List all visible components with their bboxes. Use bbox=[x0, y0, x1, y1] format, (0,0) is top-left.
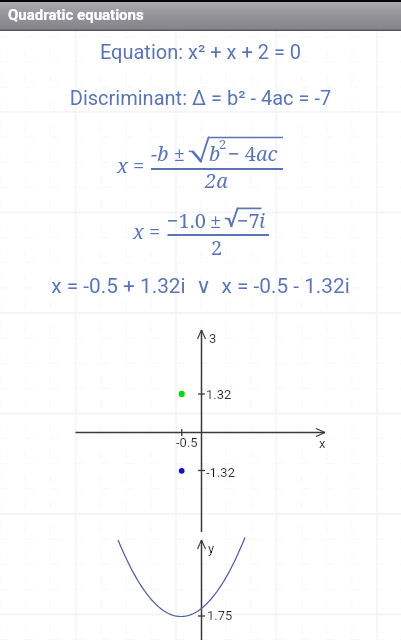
staticText: 2 bbox=[211, 234, 223, 261]
staticText: 1.32 bbox=[206, 387, 232, 402]
staticText: = bbox=[133, 152, 145, 179]
staticText: 2 bbox=[219, 135, 227, 153]
staticText: Discriminant: Δ = b² - 4ac = -7 bbox=[0, 86, 401, 109]
staticText: i bbox=[259, 207, 266, 234]
staticText: 2a bbox=[205, 167, 228, 194]
staticText: = bbox=[149, 218, 161, 245]
staticText: −1.0 bbox=[167, 207, 206, 234]
staticText: -0.5 bbox=[176, 435, 198, 450]
staticText: x bbox=[133, 218, 144, 245]
staticText: − 4 bbox=[228, 140, 256, 167]
staticText: −b ± bbox=[151, 140, 185, 167]
staticText: 1.75 bbox=[207, 608, 233, 623]
other: Roots plot bbox=[0, 0, 401, 640]
staticText: x bbox=[319, 436, 326, 451]
staticText: x bbox=[117, 152, 128, 179]
staticText: y bbox=[208, 541, 215, 556]
staticText: −7 bbox=[237, 207, 260, 234]
staticText: Quadratic equations bbox=[8, 6, 144, 24]
staticText: x = -0.5 + 1.32i ∨ x = -0.5 - 1.32i bbox=[0, 274, 401, 298]
staticText: Equation: x² + x + 2 = 0 bbox=[0, 40, 401, 63]
staticText: b bbox=[209, 140, 221, 167]
staticText: ac bbox=[256, 140, 278, 167]
staticText: -1.32 bbox=[206, 465, 235, 480]
button[interactable]: Quadratic equations bbox=[0, 0, 401, 31]
staticText: 3 bbox=[209, 331, 217, 346]
staticText: ± bbox=[210, 207, 222, 234]
